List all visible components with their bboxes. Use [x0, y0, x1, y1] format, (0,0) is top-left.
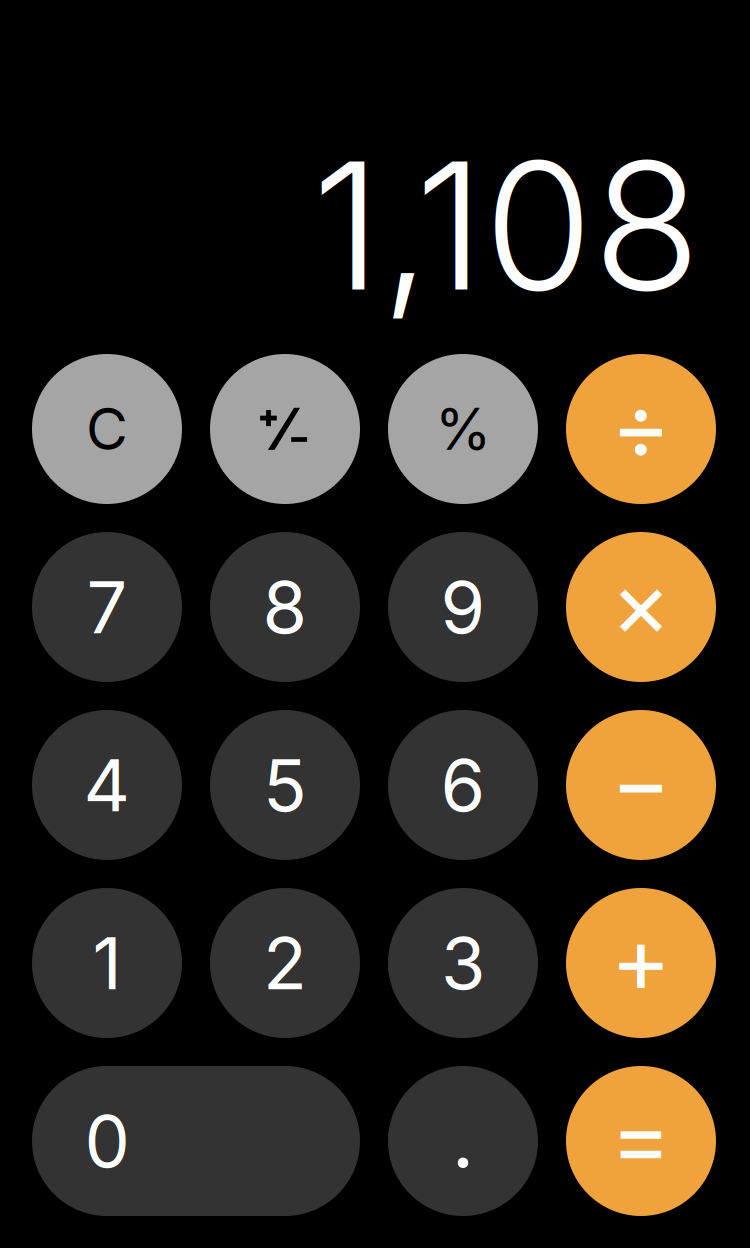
- staticText: 9: [440, 563, 485, 650]
- button[interactable]: 1: [32, 888, 182, 1038]
- staticText: C: [86, 394, 128, 464]
- staticText: %: [435, 394, 491, 464]
- button[interactable]: −: [566, 710, 716, 860]
- button[interactable]: 4: [32, 710, 182, 860]
- button[interactable]: C: [32, 354, 182, 504]
- staticText: ÷: [610, 370, 671, 481]
- button[interactable]: %: [388, 354, 538, 504]
- staticText: ×: [610, 548, 671, 659]
- staticText: 6: [440, 741, 485, 828]
- button[interactable]: 7: [32, 532, 182, 682]
- staticText: −: [610, 726, 671, 837]
- staticText: 4: [83, 741, 130, 828]
- button[interactable]: 9: [388, 532, 538, 682]
- staticText: 1,108: [312, 119, 701, 332]
- button[interactable]: ÷: [566, 354, 716, 504]
- button[interactable]: 6: [388, 710, 538, 860]
- staticText: 2: [263, 919, 307, 1006]
- button[interactable]: =: [566, 1066, 716, 1216]
- button[interactable]: 0: [32, 1066, 360, 1216]
- button[interactable]: 8: [210, 532, 360, 682]
- staticText: 3: [441, 919, 485, 1006]
- staticText: 8: [262, 563, 307, 650]
- button[interactable]: Toggle sign: [210, 354, 360, 504]
- button[interactable]: 3: [388, 888, 538, 1038]
- staticText: =: [610, 1082, 671, 1193]
- staticText: 0: [84, 1097, 129, 1184]
- staticText: 1: [92, 919, 121, 1006]
- staticText: 5: [263, 741, 307, 828]
- button[interactable]: Decimal point: [388, 1066, 538, 1216]
- staticText: 7: [86, 563, 127, 650]
- button[interactable]: +: [566, 888, 716, 1038]
- button[interactable]: 2: [210, 888, 360, 1038]
- button[interactable]: ×: [566, 532, 716, 682]
- staticText: +: [610, 904, 671, 1015]
- button[interactable]: 5: [210, 710, 360, 860]
